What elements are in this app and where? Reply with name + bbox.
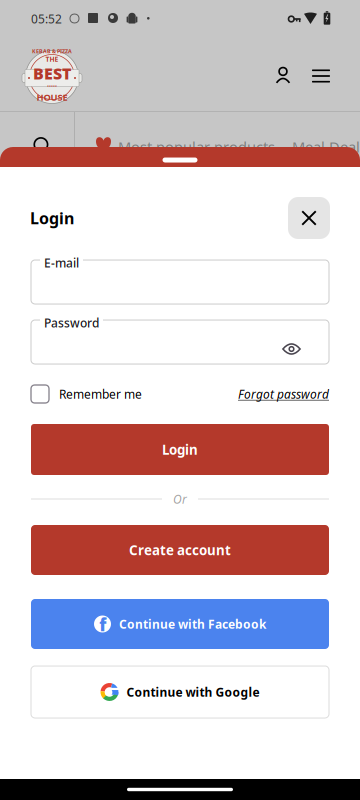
staticText: 05:52: [31, 11, 62, 27]
staticText: KEBAB & PIZZA: [32, 48, 72, 55]
button[interactable]: Forgot password: [238, 386, 329, 402]
staticText: Login: [162, 441, 198, 458]
staticText: Meal Deal: [292, 137, 360, 156]
staticText: Continue with Facebook: [119, 616, 266, 632]
staticText: Continue with Google: [126, 684, 259, 700]
staticText: Forgot password: [238, 386, 329, 402]
button[interactable]: Menu: [308, 63, 334, 89]
button[interactable]: Most popular products: [118, 137, 275, 156]
staticText: Create account: [129, 541, 231, 559]
staticText: •••••: [47, 83, 57, 90]
button[interactable]: f: [31, 599, 329, 649]
staticText: Password: [44, 315, 99, 331]
staticText: E-mail: [44, 255, 79, 271]
staticText: THE: [45, 55, 58, 64]
button[interactable]: Meal Deal: [292, 137, 360, 156]
button[interactable]: Remember me: [31, 385, 142, 403]
button[interactable]: Login: [31, 424, 329, 475]
button[interactable]: Account: [270, 63, 296, 89]
staticText: Most popular products: [118, 137, 275, 156]
button[interactable]: Create account: [31, 525, 329, 575]
staticText: Remember me: [59, 386, 142, 402]
staticText: HOUSE: [36, 91, 67, 103]
staticText: BEST: [33, 63, 71, 84]
staticText: Or: [173, 491, 187, 507]
button[interactable]: Continue with Google: [31, 666, 329, 718]
staticText: f: [99, 613, 106, 636]
staticText: Login: [30, 207, 74, 229]
button[interactable]: Close: [288, 197, 330, 239]
button[interactable]: Search: [27, 131, 57, 161]
